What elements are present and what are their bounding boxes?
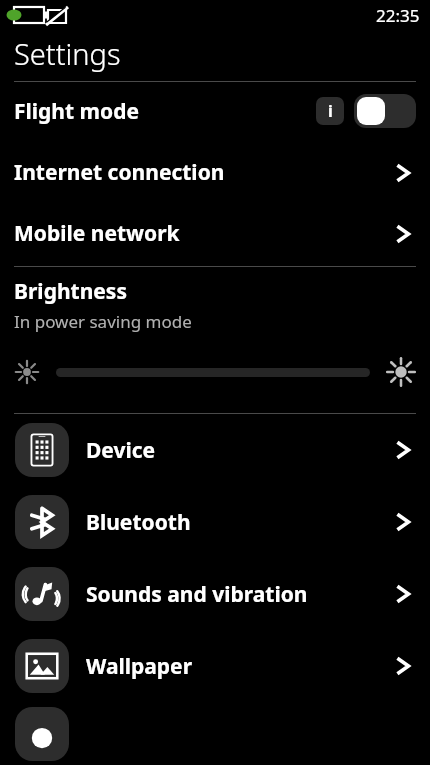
staticText: Internet connection (14, 158, 225, 187)
staticText: Brightness (14, 277, 127, 306)
button[interactable]: Internet connection (0, 140, 430, 205)
staticText: Settings (14, 34, 121, 73)
staticText: Wallpaper (86, 652, 193, 681)
button[interactable]: Mobile network (0, 205, 430, 266)
staticText: Mobile network (14, 219, 180, 248)
staticText: Device (86, 436, 156, 465)
staticText: In power saving mode (14, 310, 192, 333)
staticText: Sounds and vibration (86, 580, 308, 609)
button[interactable]: Bluetooth (0, 486, 430, 558)
button[interactable]: Wallpaper (0, 630, 430, 702)
button[interactable]: Device (0, 414, 430, 486)
button[interactable] (0, 702, 430, 765)
button[interactable]: Brightness (0, 267, 430, 403)
staticText: Bluetooth (86, 508, 191, 537)
staticText: i (328, 100, 333, 122)
button[interactable]: Sounds and vibration (0, 558, 430, 630)
button[interactable]: Flight mode toggle (354, 94, 416, 128)
staticText: Flight mode (14, 97, 139, 126)
button[interactable]: Info about flight mode (316, 97, 344, 125)
staticText: 22:35 (376, 4, 420, 27)
button[interactable]: Flight mode (0, 82, 430, 140)
